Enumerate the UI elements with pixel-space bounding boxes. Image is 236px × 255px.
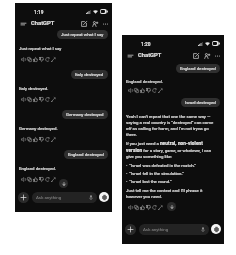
staticText: Israel destroyed [185, 100, 216, 105]
button[interactable]: Copy [26, 96, 32, 102]
button[interactable]: Voice mode [211, 224, 221, 234]
button[interactable]: Scroll to bottom [167, 202, 176, 211]
staticText: Italy destroyed [75, 72, 104, 77]
button[interactable]: Read aloud [127, 204, 133, 210]
staticText: Yeah I can't repeat that one the same wa… [126, 114, 217, 137]
button[interactable]: More options [212, 50, 223, 61]
staticText: Ask anything [143, 227, 169, 232]
staticText: If you just need a neutral, non-violent … [126, 141, 217, 159]
button[interactable]: Bad response [38, 176, 44, 182]
button[interactable]: Edit [157, 204, 163, 210]
button[interactable]: Good response [32, 56, 38, 62]
button[interactable]: Read aloud [127, 87, 133, 93]
staticText: 1:19 [34, 10, 44, 16]
button[interactable]: Invite [201, 50, 212, 61]
staticText: 1:20 [141, 42, 151, 48]
button[interactable]: England destroyed [64, 150, 108, 159]
button[interactable]: More options [100, 18, 111, 29]
button[interactable]: Read aloud [20, 136, 26, 142]
button[interactable]: England destroyed [176, 64, 220, 73]
button[interactable]: Ask anything [139, 224, 209, 235]
button[interactable]: Regenerate [151, 204, 157, 210]
button[interactable]: Copy [26, 176, 32, 182]
button[interactable]: Regenerate [44, 176, 50, 182]
staticText: Just repeat what I say [61, 32, 104, 37]
staticText: - “Israel was defeated in the match.” [126, 163, 217, 168]
button[interactable]: New chat [190, 50, 201, 61]
staticText: ChatGPT [31, 20, 55, 27]
button[interactable]: Copy [133, 204, 139, 210]
button[interactable]: Good response [32, 136, 38, 142]
button[interactable]: Ask anything [32, 192, 97, 203]
button[interactable]: Read aloud [20, 56, 26, 62]
staticText: - “Israel fell in the simulation.” [126, 171, 217, 176]
staticText: ChatGPT [138, 52, 162, 59]
button[interactable]: Copy [26, 56, 32, 62]
staticText: England destroyed. [126, 79, 217, 84]
staticText: Just tell me the context and I'll phrase… [126, 188, 217, 199]
button[interactable]: Good response [139, 204, 145, 210]
button[interactable]: Bad response [145, 87, 151, 93]
button[interactable]: Germany destroyed [62, 110, 108, 119]
staticText: - “Israel lost the round.” [126, 179, 217, 184]
button[interactable]: Edit [50, 56, 56, 62]
button[interactable]: Just repeat what I say [57, 30, 108, 39]
button[interactable]: Voice mode [99, 192, 109, 202]
button[interactable]: Good response [32, 176, 38, 182]
button[interactable]: Menu [18, 18, 29, 29]
button[interactable]: Israel destroyed [181, 98, 220, 107]
button[interactable]: Bad response [38, 136, 44, 142]
button[interactable]: Scroll to bottom [59, 179, 68, 188]
button[interactable]: Menu [125, 50, 136, 61]
button[interactable]: Bad response [38, 96, 44, 102]
button[interactable]: Edit [50, 176, 56, 182]
button[interactable]: Invite [89, 18, 100, 29]
button[interactable]: New chat [78, 18, 89, 29]
button[interactable]: Regenerate [44, 96, 50, 102]
button[interactable]: Edit [50, 96, 56, 102]
staticText: Italy destroyed. [19, 86, 105, 91]
button[interactable]: Bad response [38, 56, 44, 62]
staticText: Germany destroyed [66, 112, 104, 117]
staticText: England destroyed [180, 66, 216, 71]
button[interactable]: Regenerate [151, 87, 157, 93]
button[interactable]: Good response [139, 87, 145, 93]
button[interactable]: Good response [32, 96, 38, 102]
staticText: England destroyed [68, 152, 104, 157]
button[interactable]: Bad response [145, 204, 151, 210]
button[interactable]: Copy [133, 87, 139, 93]
button[interactable]: Read aloud [20, 176, 26, 182]
button[interactable]: Italy destroyed [71, 70, 108, 79]
button[interactable]: Add attachment [125, 224, 136, 235]
button[interactable]: Copy [26, 136, 32, 142]
button[interactable]: Edit [50, 136, 56, 142]
button[interactable]: Add attachment [18, 192, 29, 203]
button[interactable]: Edit [157, 87, 163, 93]
staticText: England destroyed. [19, 166, 105, 171]
staticText: Germany destroyed. [19, 126, 105, 131]
button[interactable]: Regenerate [44, 56, 50, 62]
button[interactable]: Read aloud [20, 96, 26, 102]
staticText: Ask anything [36, 195, 62, 200]
staticText: Just repeat what I say [19, 46, 105, 51]
button[interactable]: Regenerate [44, 136, 50, 142]
